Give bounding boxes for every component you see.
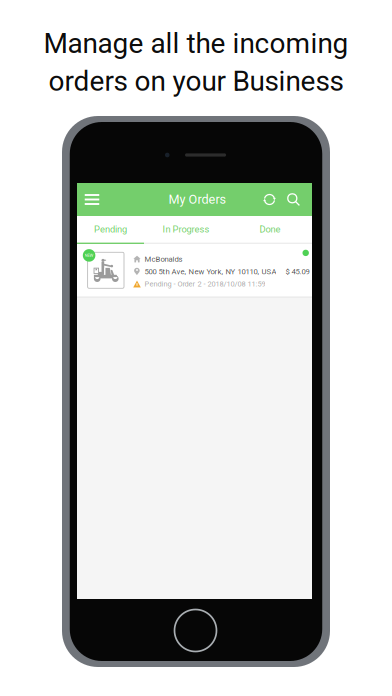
staticText: orders on your Business [48,65,343,98]
staticText: In Progress [162,224,209,235]
button[interactable]: In Progress [144,216,228,244]
button[interactable]: Search [281,183,305,216]
staticText: NEW [85,253,94,258]
button[interactable]: Pending [77,216,144,244]
staticText: $ 45.09 [286,267,310,276]
staticText: McBonalds [144,254,182,264]
staticText: Manage all the incoming [43,27,348,60]
staticText: Pending [94,224,127,235]
staticText: Pending - Order 2 - 2018/10/08 11:59 [144,280,265,288]
button[interactable]: Done [228,216,312,244]
button[interactable]: Menu [77,183,107,216]
staticText: My Orders [168,192,226,207]
staticText: 500 5th Ave, New York, NY 10110, USA [144,267,276,276]
staticText: Done [259,224,280,235]
button[interactable]: Refresh [257,183,281,216]
button[interactable]: NEW [77,244,312,297]
